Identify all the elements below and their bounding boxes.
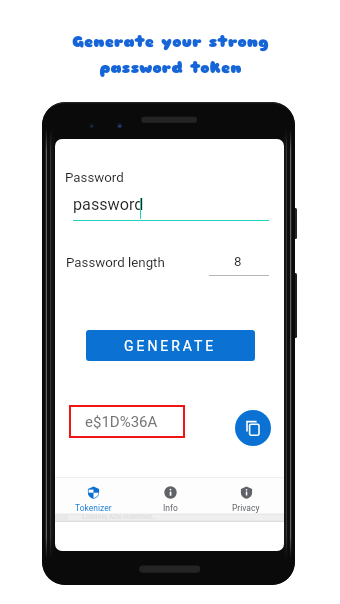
button[interactable]: Privacy: [208, 478, 284, 513]
staticText: Privacy: [232, 503, 260, 513]
staticText: Loading ADs collected...: [82, 513, 158, 520]
button[interactable]: GENERATE: [86, 330, 255, 361]
staticText: Password: [65, 170, 124, 186]
staticText: Info: [163, 503, 178, 513]
button[interactable]: Copy password: [235, 410, 271, 446]
staticText: 8: [234, 254, 242, 270]
staticText: e$1D%36A: [85, 413, 158, 431]
button[interactable]: e$1D%36A: [69, 405, 185, 438]
staticText: Password length: [66, 255, 165, 271]
staticText: Tokenizer: [75, 503, 112, 513]
button[interactable]: Info: [132, 478, 208, 513]
staticText: GENERATE: [124, 338, 217, 354]
staticText: password: [73, 195, 144, 214]
button[interactable]: Tokenizer: [55, 478, 132, 513]
staticText: Generate your strong password token: [72, 32, 269, 78]
